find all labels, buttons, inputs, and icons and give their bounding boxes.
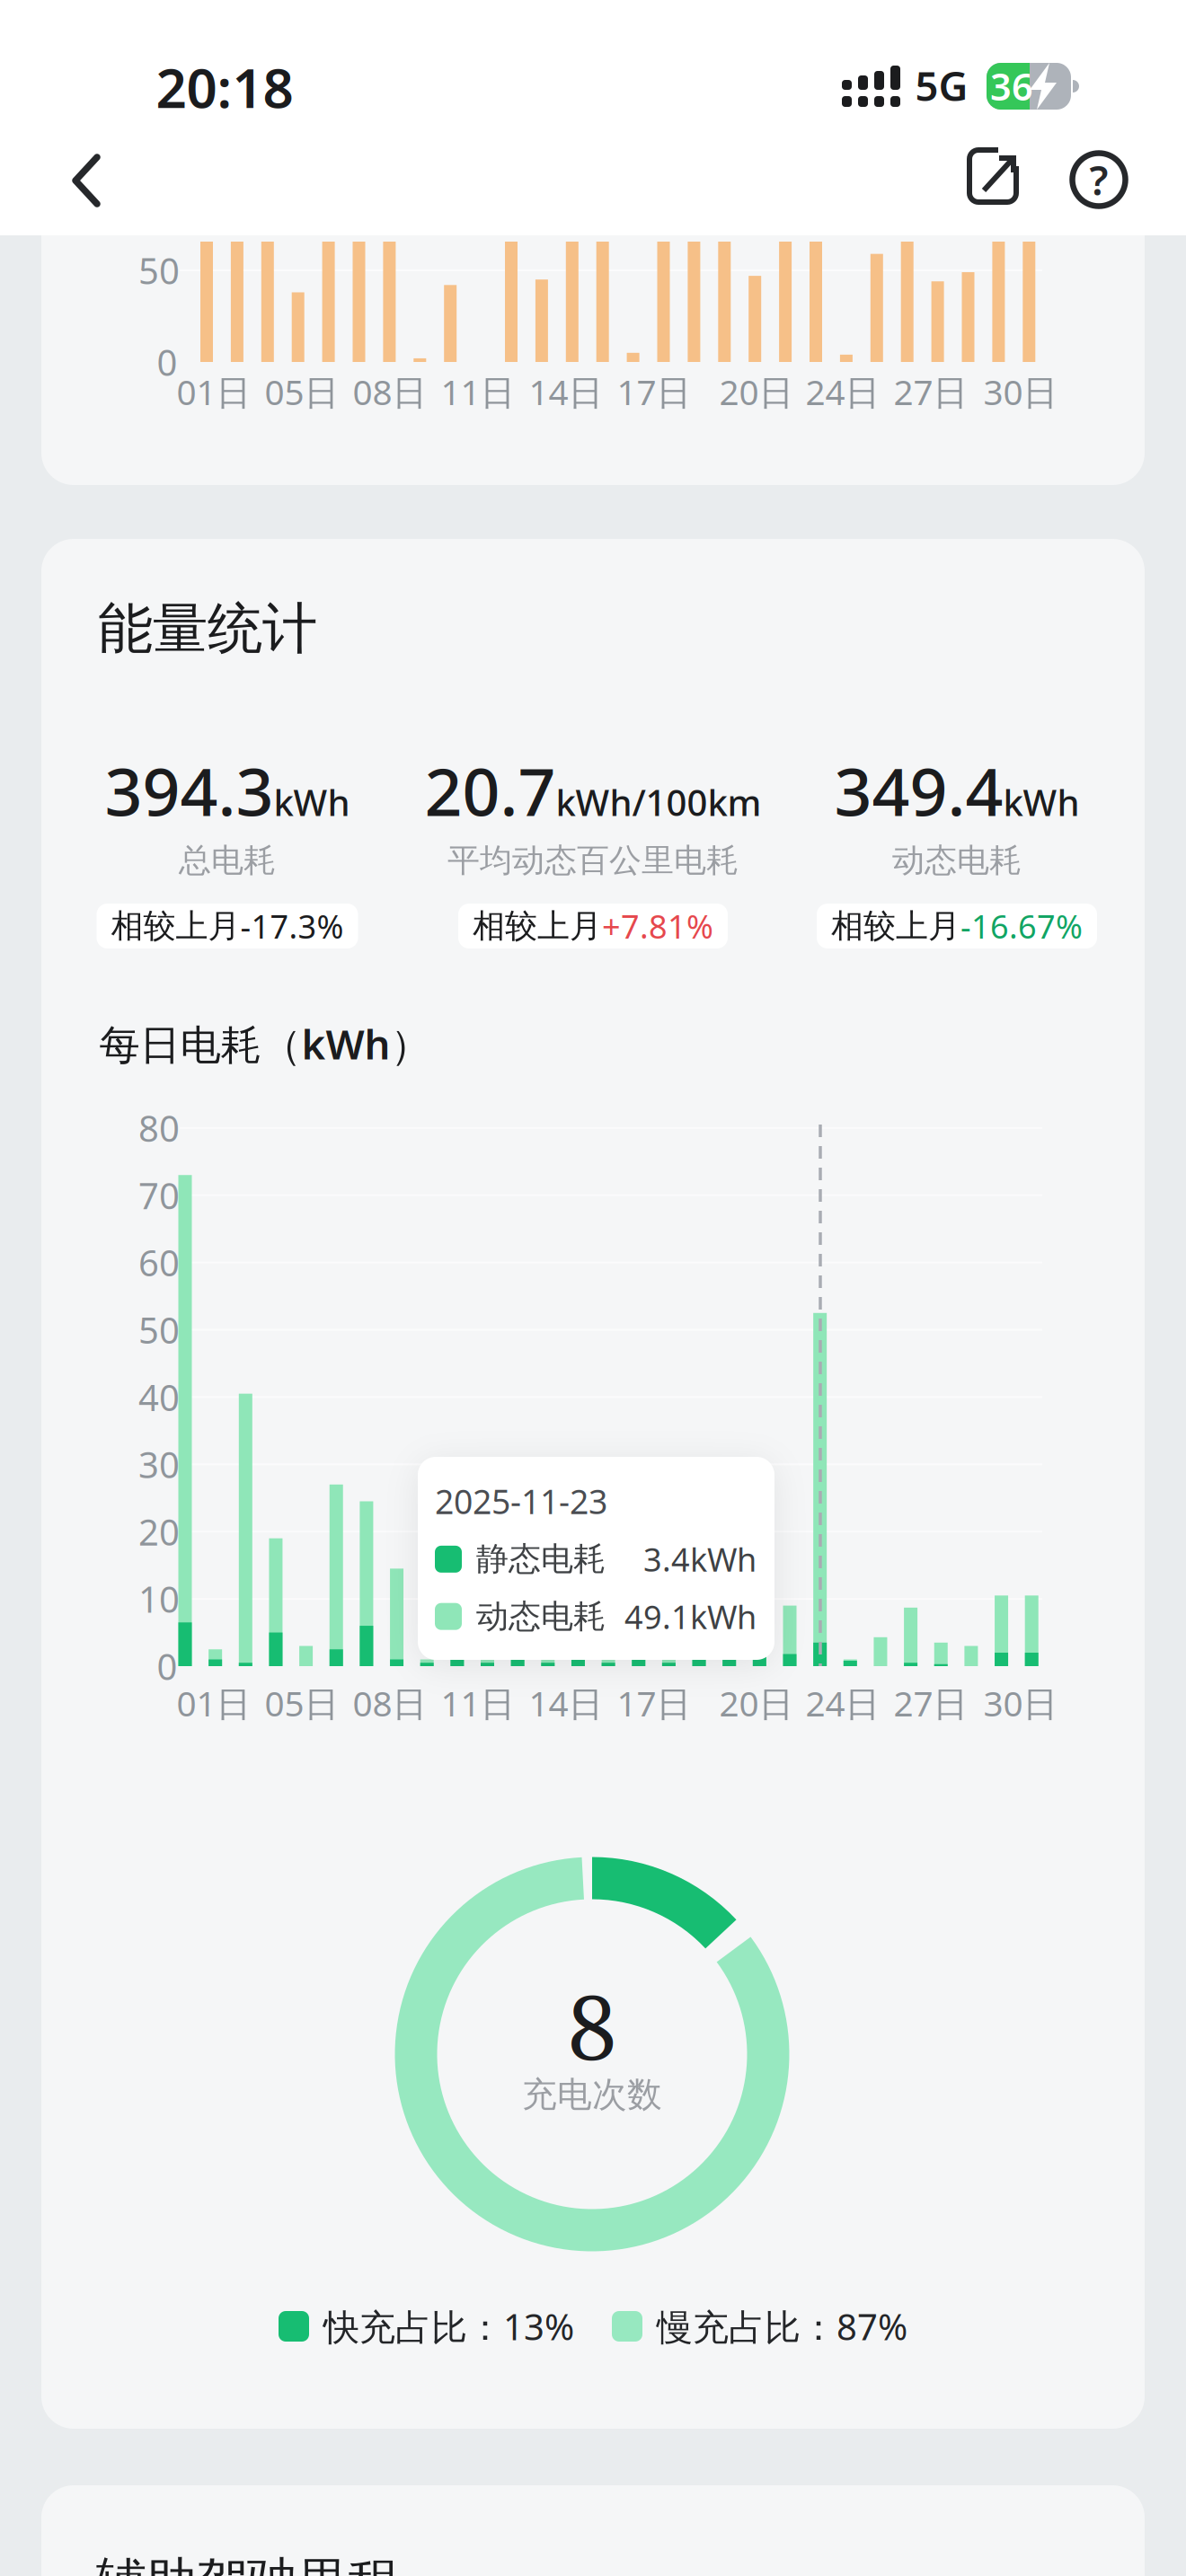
staticText: 2025-11-23	[435, 1479, 607, 1523]
staticText: 08日	[353, 369, 427, 415]
staticText: 3.4kWh	[643, 1538, 757, 1581]
staticText: 24日	[805, 369, 880, 415]
staticText: 11日	[441, 369, 515, 415]
button[interactable]: ?	[1054, 135, 1144, 225]
staticText: 能量统计	[98, 595, 317, 663]
staticText: 30	[138, 1440, 180, 1488]
staticText: 24日	[805, 1680, 880, 1726]
staticText: -16.67%	[960, 905, 1083, 947]
staticText: 总电耗	[179, 841, 276, 880]
staticText: 49.1kWh	[624, 1595, 757, 1638]
staticText: 14日	[529, 1680, 603, 1726]
staticText: 01日	[177, 1680, 251, 1726]
staticText: 20日	[719, 1680, 794, 1726]
staticText: 70	[138, 1171, 180, 1219]
staticText: 349.4kWh	[834, 747, 1080, 834]
staticText: 394.3kWh	[105, 747, 350, 834]
staticText: 相较上月	[473, 906, 602, 946]
button[interactable]	[947, 135, 1037, 225]
staticText: ?	[1089, 153, 1108, 207]
staticText: 01日	[177, 369, 251, 415]
staticText: 0	[157, 1642, 177, 1690]
staticText: 动态电耗	[476, 1597, 606, 1636]
staticText: 20.7kWh/100km	[425, 747, 761, 834]
staticText: 80	[138, 1104, 180, 1152]
staticText: 静态电耗	[476, 1539, 606, 1579]
staticText: 动态电耗	[892, 841, 1022, 880]
staticText: 20:18	[156, 51, 293, 123]
staticText: -17.3%	[240, 905, 344, 947]
staticText: 相较上月	[831, 906, 960, 946]
staticText: 充电次数	[522, 2073, 662, 2116]
staticText: 14日	[529, 369, 603, 415]
staticText: 30日	[983, 1680, 1058, 1726]
staticText: 8	[567, 1965, 617, 2086]
staticText: 17日	[617, 369, 691, 415]
staticText: 50	[138, 246, 180, 294]
staticText: 20日	[719, 369, 794, 415]
staticText: 相较上月	[111, 906, 240, 946]
staticText: 05日	[265, 1680, 339, 1726]
staticText: 每日电耗（kWh）	[99, 1017, 431, 1071]
staticText: 30日	[983, 369, 1058, 415]
staticText: 27日	[894, 1680, 968, 1726]
staticText: 27日	[894, 369, 968, 415]
staticText: 平均动态百公里电耗	[447, 841, 739, 880]
button[interactable]	[41, 145, 131, 216]
staticText: 08日	[353, 1680, 427, 1726]
staticText: 36	[990, 62, 1033, 111]
staticText: 50	[138, 1306, 180, 1354]
staticText: 10	[138, 1575, 180, 1623]
staticText: 40	[138, 1373, 180, 1421]
staticText: 0	[157, 338, 177, 386]
staticText: 慢充占比：87%	[657, 2302, 907, 2350]
staticText: 辅助驾驶里程	[96, 2550, 398, 2576]
staticText: 快充占比：13%	[323, 2302, 574, 2350]
staticText: 5G	[915, 58, 968, 112]
staticText: +7.81%	[602, 905, 713, 947]
staticText: 20	[138, 1508, 180, 1555]
staticText: 05日	[265, 369, 339, 415]
staticText: 11日	[441, 1680, 515, 1726]
staticText: 17日	[617, 1680, 691, 1726]
staticText: 60	[138, 1239, 180, 1286]
